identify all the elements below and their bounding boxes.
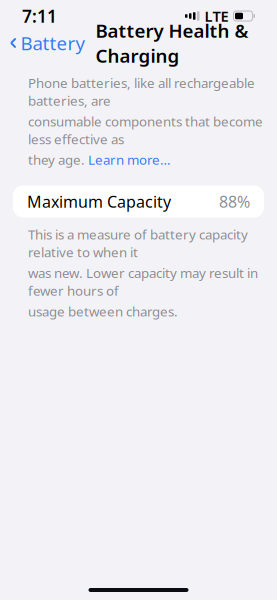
- staticText: consumable components that become less e…: [28, 112, 263, 148]
- staticText: Battery: [21, 31, 86, 55]
- button[interactable]: Learn more…: [88, 151, 171, 168]
- staticText: 88%: [219, 191, 250, 212]
- staticText: Battery Health & Charging: [96, 18, 249, 68]
- staticText: LTE: [204, 6, 228, 26]
- button[interactable]: Maximum Capacity: [13, 185, 264, 217]
- staticText: Maximum Capacity: [27, 191, 171, 212]
- staticText: usage between charges.: [28, 302, 178, 320]
- staticText: Learn more…: [88, 151, 171, 168]
- staticText: they age.: [28, 151, 88, 168]
- staticText: 7:11: [22, 4, 57, 27]
- staticText: Phone batteries, like all rechargeable b…: [28, 74, 255, 109]
- staticText: past 80% until you need to use it.: [28, 575, 231, 593]
- staticText: was new. Lower capacity may result in fe…: [28, 264, 258, 299]
- button[interactable]: Battery: [0, 25, 92, 61]
- staticText: This is a measure of battery capacity re…: [28, 225, 248, 261]
